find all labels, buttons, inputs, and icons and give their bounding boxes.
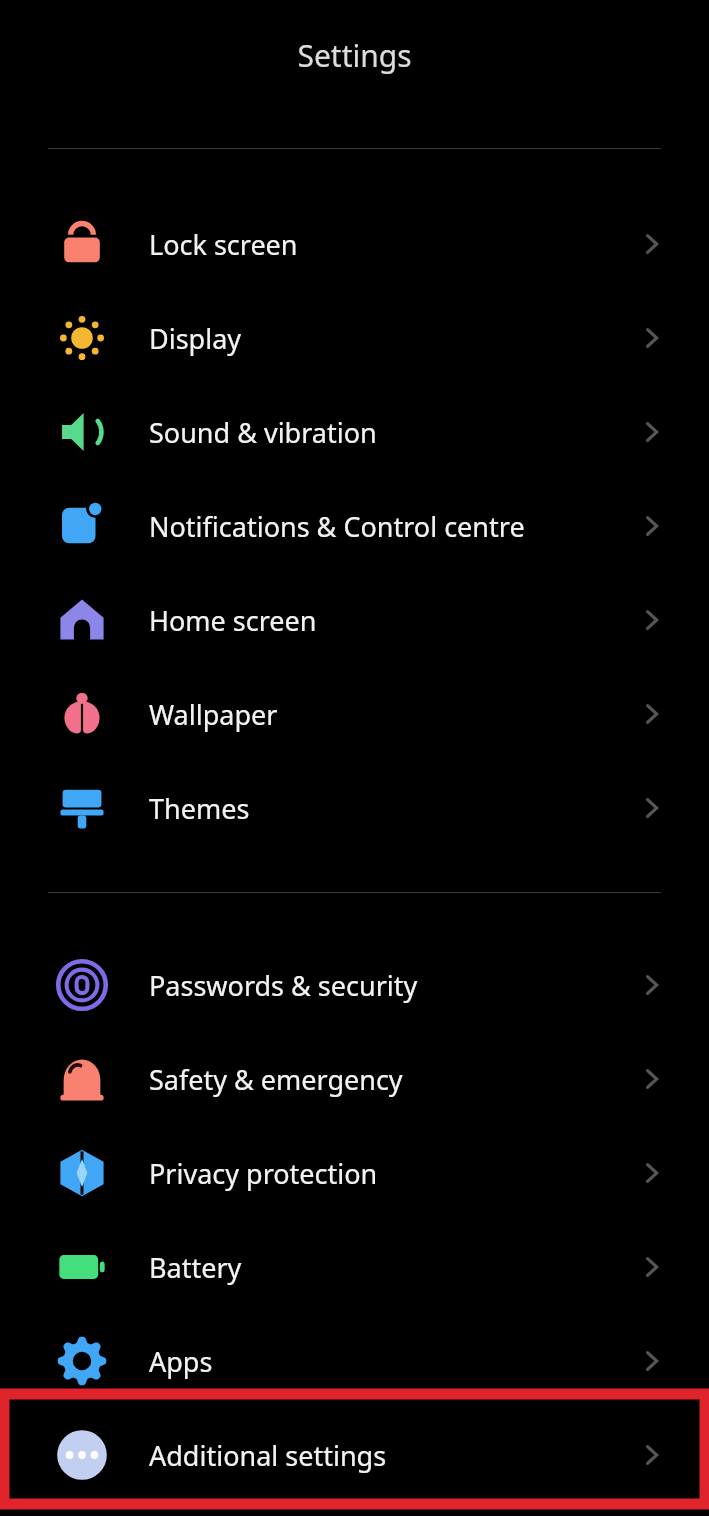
staticText: Home screen — [149, 602, 639, 639]
staticText: Notifications & Control centre — [149, 508, 639, 545]
other: Open Sound & vibration — [639, 419, 665, 445]
button[interactable]: Passwords & security — [0, 938, 709, 1032]
staticText: Sound & vibration — [149, 414, 639, 451]
staticText: Additional settings — [149, 1437, 639, 1474]
button[interactable]: Privacy protection — [0, 1126, 709, 1220]
button[interactable]: Notifications & Control centre — [0, 479, 709, 573]
button[interactable]: Themes — [0, 761, 709, 855]
staticText: Apps — [149, 1343, 639, 1380]
staticText: Themes — [149, 790, 639, 827]
other: Open Privacy protection — [639, 1160, 665, 1186]
other: Open Wallpaper — [639, 701, 665, 727]
other: Open Passwords & security — [639, 972, 665, 998]
button[interactable]: Home screen — [0, 573, 709, 667]
staticText: Privacy protection — [149, 1155, 639, 1192]
button[interactable]: Wallpaper — [0, 667, 709, 761]
staticText: Wallpaper — [149, 696, 639, 733]
other: Open Safety & emergency — [639, 1066, 665, 1092]
button[interactable]: Safety & emergency — [0, 1032, 709, 1126]
button[interactable]: Apps — [0, 1314, 709, 1408]
button[interactable]: Lock screen — [0, 197, 709, 291]
button[interactable]: Additional settings — [0, 1408, 709, 1502]
other: Open Display — [639, 325, 665, 351]
other: Open Lock screen — [639, 231, 665, 257]
staticText: Settings — [297, 35, 412, 76]
staticText: Passwords & security — [149, 967, 639, 1004]
staticText: Safety & emergency — [149, 1061, 639, 1098]
other: Open Themes — [639, 795, 665, 821]
other: Open Apps — [639, 1348, 665, 1374]
button[interactable]: Sound & vibration — [0, 385, 709, 479]
other: Open Battery — [639, 1254, 665, 1280]
staticText: Lock screen — [149, 226, 639, 263]
staticText: Battery — [149, 1249, 639, 1286]
other: Open Notifications & Control centre — [639, 513, 665, 539]
button[interactable]: Display — [0, 291, 709, 385]
other: Open Additional settings — [639, 1442, 665, 1468]
button[interactable]: Battery — [0, 1220, 709, 1314]
staticText: Display — [149, 320, 639, 357]
other: Open Home screen — [639, 607, 665, 633]
